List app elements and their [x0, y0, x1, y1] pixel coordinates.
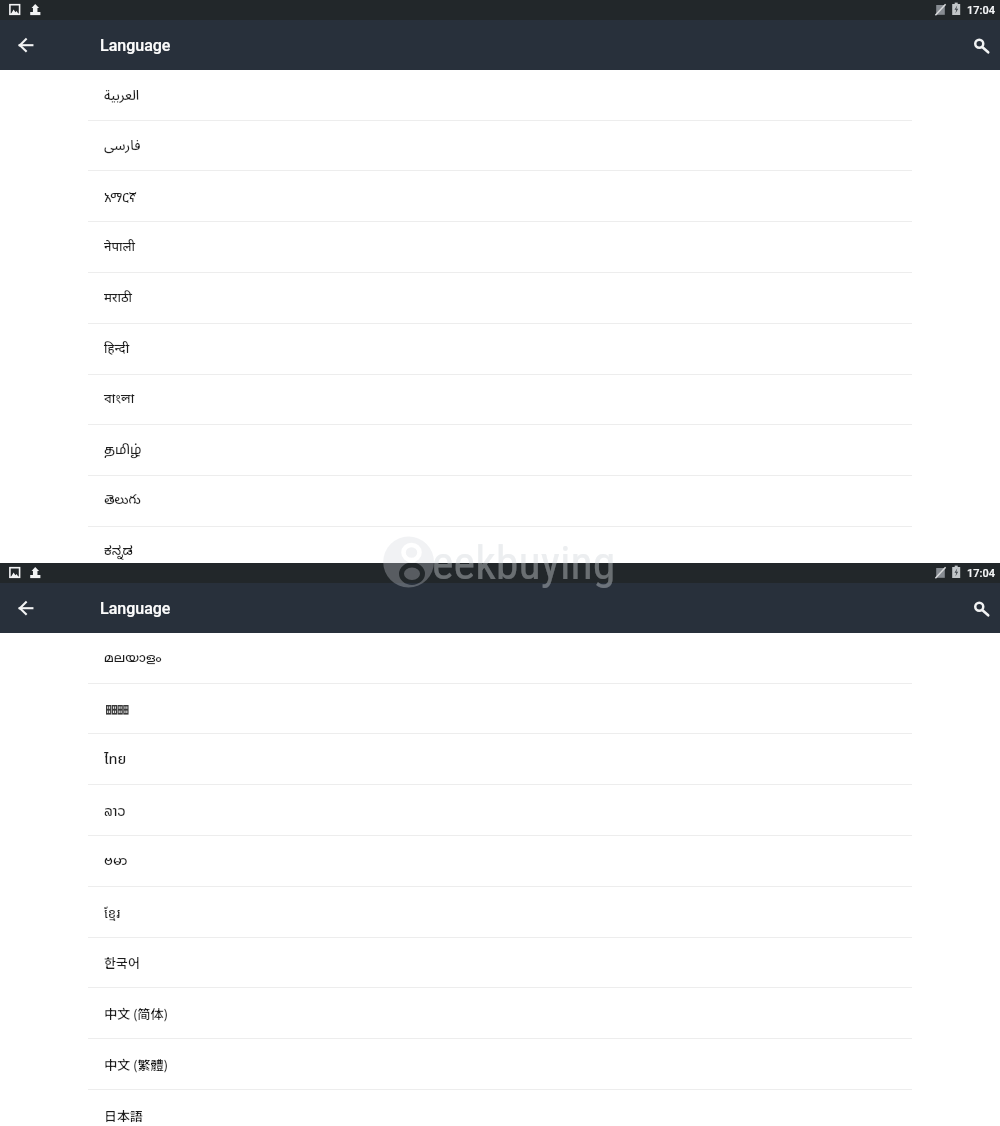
button[interactable]: 한국어 [0, 937, 1000, 988]
button[interactable]: Search [952, 21, 1000, 69]
staticText: 17:04 [967, 567, 995, 580]
staticText: বাংলা [104, 391, 135, 408]
staticText: ไทย [104, 749, 127, 771]
button[interactable]: हिन्दी [0, 324, 1000, 375]
button[interactable]: മലയാളം [0, 633, 1000, 684]
button[interactable]: ລາວ [0, 785, 1000, 836]
button[interactable]: ဗမာ [0, 836, 1000, 887]
staticText: eekbuying [432, 536, 616, 590]
button[interactable]: Navigate up [0, 584, 48, 632]
button[interactable]: తెలుగు [0, 476, 1000, 527]
staticText: 17:04 [967, 4, 995, 17]
button[interactable]: 中文 (繁體) [0, 1039, 1000, 1090]
staticText: ಕನ್ನಡ [104, 544, 133, 562]
staticText: 한국어 [104, 953, 140, 972]
button[interactable]: नेपाली [0, 222, 1000, 273]
button[interactable]: Search [952, 584, 1000, 632]
button[interactable]: Navigate up [0, 21, 48, 69]
staticText: ລາວ [104, 799, 126, 822]
button[interactable]: ไทย [0, 734, 1000, 785]
staticText: Language [100, 36, 171, 55]
staticText: 日本語 [104, 1106, 144, 1125]
button[interactable]: فارسی [0, 120, 1000, 171]
button[interactable]: 日本語 [0, 1090, 1000, 1126]
staticText: 中文 (简体) [104, 1004, 169, 1023]
staticText: नेपाली [104, 239, 136, 256]
staticText: മലയാളം [104, 651, 162, 667]
button[interactable]: मराठी [0, 273, 1000, 324]
button[interactable]: ಕನ್ನಡ [0, 527, 1000, 578]
staticText: العربية [104, 81, 140, 110]
button[interactable]: বাংলা [0, 374, 1000, 425]
button[interactable]: ខ្មែរ [0, 887, 1000, 938]
staticText: ខ្មែរ [104, 904, 121, 922]
staticText: हिन्दी [104, 341, 130, 358]
staticText: தமிழ் [104, 443, 142, 459]
staticText: Language [100, 599, 171, 618]
button[interactable]: සිංහල [0, 683, 1000, 734]
button[interactable]: العربية [0, 70, 1000, 121]
staticText: አማርኛ [104, 188, 137, 206]
staticText: తెలుగు [104, 493, 141, 511]
button[interactable]: አማርኛ [0, 171, 1000, 222]
button[interactable]: 中文 (简体) [0, 988, 1000, 1039]
button[interactable]: தமிழ் [0, 425, 1000, 476]
staticText: فارسی [104, 131, 141, 160]
staticText: 中文 (繁體) [104, 1055, 169, 1074]
staticText: ဗမာ [104, 848, 128, 876]
staticText: मराठी [104, 290, 133, 307]
